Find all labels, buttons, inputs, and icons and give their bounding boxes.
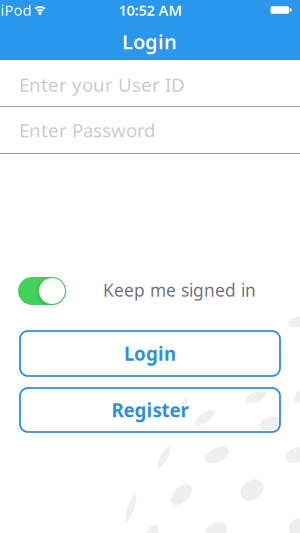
staticText: Keep me signed in	[103, 278, 256, 301]
button[interactable]: Enter your User ID	[0, 62, 300, 107]
staticText: Enter your User ID	[19, 72, 185, 97]
button[interactable]: Register	[20, 388, 280, 432]
staticText: 10:52 AM	[118, 0, 182, 20]
button[interactable]: Keep me signed in	[18, 277, 66, 305]
staticText: iPod	[0, 0, 31, 20]
staticText: Register	[111, 398, 188, 422]
button[interactable]: Enter Password	[0, 107, 300, 152]
staticText: Login	[124, 341, 176, 366]
button[interactable]: Login	[20, 331, 280, 376]
staticText: Enter Password	[19, 118, 155, 142]
staticText: Login	[122, 28, 177, 55]
